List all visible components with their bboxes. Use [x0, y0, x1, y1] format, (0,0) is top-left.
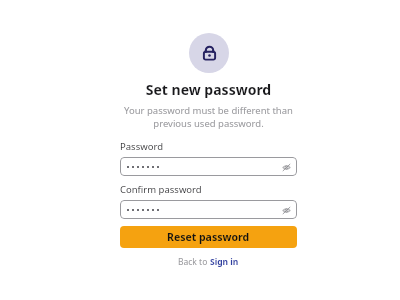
- staticText: Back to: [178, 256, 210, 268]
- staticText: Sign in: [210, 256, 239, 268]
- button[interactable]: Show password: [120, 157, 297, 176]
- button[interactable]: Show password: [281, 205, 291, 215]
- staticText: Password: [120, 140, 297, 153]
- staticText: Your password must be different than pre…: [120, 104, 297, 130]
- staticText: Reset password: [167, 230, 250, 244]
- button[interactable]: Sign in: [210, 256, 239, 268]
- staticText: Confirm password: [120, 183, 297, 196]
- button[interactable]: Show password: [120, 200, 297, 219]
- staticText: Set new password: [120, 80, 297, 99]
- button[interactable]: Reset password: [120, 226, 297, 248]
- button[interactable]: Show password: [281, 162, 291, 172]
